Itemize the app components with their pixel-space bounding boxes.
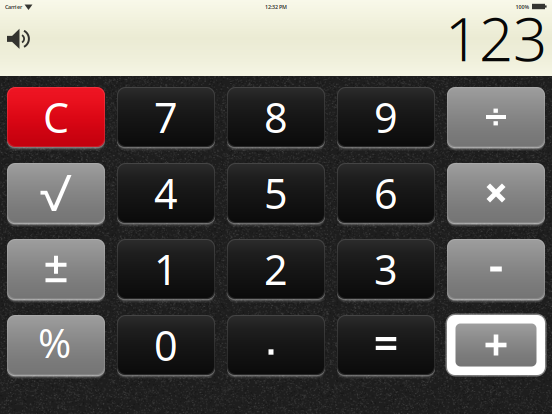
button[interactable]: √ [7, 163, 105, 223]
staticText: 100% [515, 3, 529, 11]
staticText: Carrier [5, 3, 22, 11]
staticText: 9 [374, 90, 398, 144]
staticText: 4 [154, 166, 178, 220]
staticText: 2 [264, 242, 288, 296]
button[interactable]: + [447, 315, 545, 375]
staticText: 0 [154, 318, 178, 372]
button[interactable]: ± [7, 239, 105, 299]
button[interactable]: 8 [227, 87, 325, 147]
button[interactable]: × [447, 163, 545, 223]
staticText: 12:32 PM [265, 3, 287, 11]
staticText: 7 [154, 90, 178, 144]
button[interactable]: 7 [117, 87, 215, 147]
button[interactable]: 0 [117, 315, 215, 375]
button[interactable]: 1 [117, 239, 215, 299]
staticText: 123 [445, 0, 547, 78]
button[interactable]: - [447, 239, 545, 299]
staticText: 1 [154, 242, 178, 296]
button[interactable]: = [337, 315, 435, 375]
button[interactable]: . [227, 315, 325, 375]
button[interactable]: 5 [227, 163, 325, 223]
staticText: C [43, 90, 69, 144]
staticText: 8 [264, 90, 288, 144]
staticText: % [38, 316, 71, 369]
button[interactable]: % [7, 315, 105, 375]
button[interactable]: 9 [337, 87, 435, 147]
button[interactable]: 3 [337, 239, 435, 299]
button[interactable]: Sound [4, 24, 34, 54]
button[interactable]: ÷ [447, 87, 545, 147]
button[interactable]: C [7, 87, 105, 147]
button[interactable]: 2 [227, 239, 325, 299]
button[interactable]: 4 [117, 163, 215, 223]
staticText: 3 [374, 242, 398, 296]
button[interactable]: 6 [337, 163, 435, 223]
staticText: 5 [264, 166, 288, 220]
staticText: 6 [374, 166, 398, 220]
